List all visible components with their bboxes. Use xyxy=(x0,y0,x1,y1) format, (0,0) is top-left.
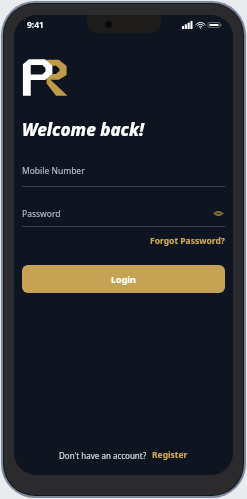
button[interactable]: Forgot Password? xyxy=(150,235,225,247)
staticText: Forgot Password? xyxy=(150,235,225,247)
staticText: 9:41 xyxy=(27,19,44,31)
staticText: Don't have an account? xyxy=(59,450,147,461)
button[interactable]: Mobile Number xyxy=(14,165,233,187)
staticText: Login xyxy=(111,273,136,285)
staticText: Password xyxy=(22,208,212,220)
button[interactable]: Login xyxy=(22,265,225,293)
staticText: Register xyxy=(152,449,188,461)
button[interactable]: Don't have an account? xyxy=(14,449,233,475)
staticText: Mobile Number xyxy=(22,165,85,177)
button[interactable]: Password xyxy=(14,207,233,227)
staticText: Welcome back! xyxy=(22,118,145,141)
button[interactable]: Show password xyxy=(212,207,225,220)
